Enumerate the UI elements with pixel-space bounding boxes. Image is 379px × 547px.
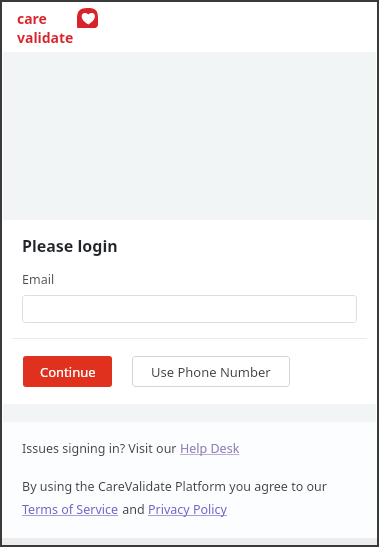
staticText: validate: [17, 28, 74, 47]
staticText: care: [17, 9, 47, 28]
staticText: Terms of Service: [22, 501, 119, 518]
staticText: By using the CareValidate Platform you a…: [22, 478, 327, 495]
staticText: and: [119, 501, 148, 518]
button[interactable]: Use Phone Number: [132, 356, 290, 387]
button[interactable]: Email input: [22, 295, 357, 323]
button[interactable]: Help Desk: [180, 440, 240, 457]
staticText: Use Phone Number: [151, 363, 271, 381]
staticText: Email: [22, 271, 55, 288]
staticText: Continue: [40, 363, 96, 381]
staticText: Privacy Policy: [148, 501, 227, 518]
staticText: Issues signing in? Visit our: [22, 440, 180, 457]
button[interactable]: Continue: [23, 356, 112, 387]
button[interactable]: Terms of Service: [22, 501, 119, 518]
button[interactable]: Privacy Policy: [148, 501, 227, 518]
staticText: Please login: [22, 235, 118, 257]
staticText: Help Desk: [180, 440, 240, 457]
